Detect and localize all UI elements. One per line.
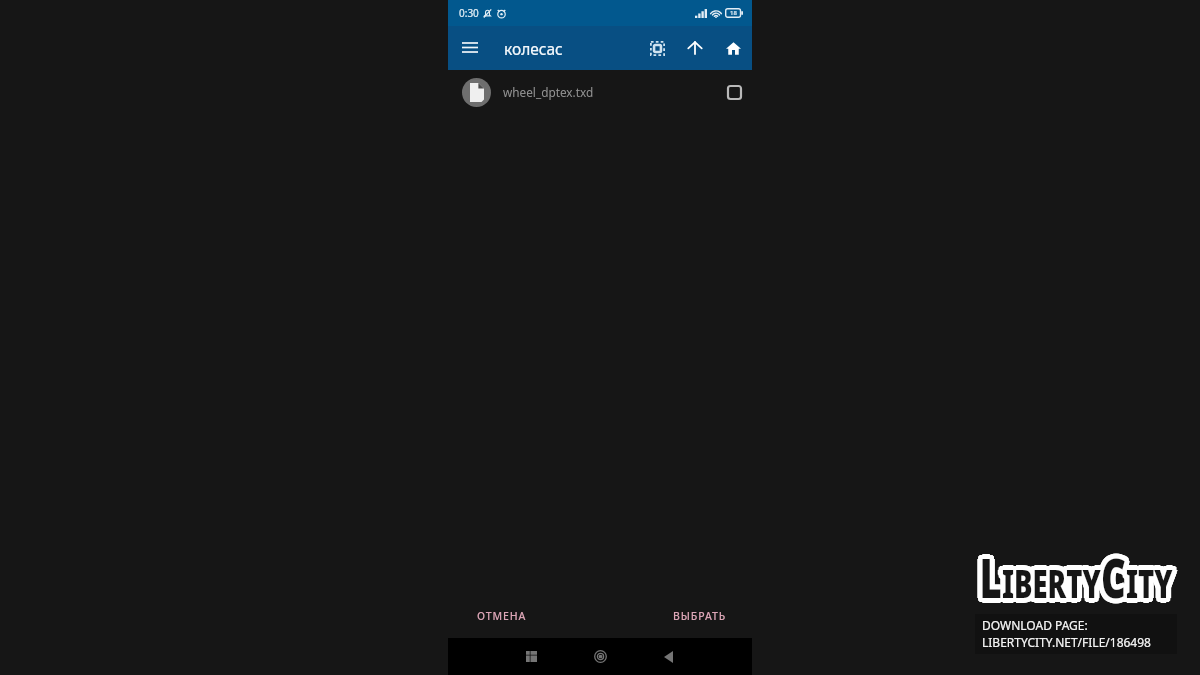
button[interactable]: ВЫБРАТЬ <box>663 594 737 638</box>
button[interactable]: Select wheel_dptex.txd <box>721 79 747 105</box>
staticText: колесас <box>504 38 563 59</box>
staticText: ВЫБРАТЬ <box>673 609 727 623</box>
button[interactable]: Home <box>714 29 752 67</box>
button[interactable]: wheel_dptex.txd <box>448 70 752 114</box>
button[interactable]: Go up <box>676 29 714 67</box>
button[interactable]: ОТМЕНА <box>467 594 537 638</box>
button[interactable]: Recent apps <box>516 638 546 675</box>
button[interactable]: Home <box>585 638 615 675</box>
staticText: wheel_dptex.txd <box>503 84 594 100</box>
button[interactable]: Select all <box>638 29 676 67</box>
staticText: LIBERTYCITY.NET/FILE/186498 <box>982 634 1151 650</box>
staticText: 0:30 <box>459 6 479 20</box>
button[interactable]: Menu <box>448 26 492 70</box>
staticText: ОТМЕНА <box>477 609 527 623</box>
staticText: DOWNLOAD PAGE: <box>982 617 1088 633</box>
button[interactable]: Back <box>653 638 683 675</box>
staticText: 18 <box>730 9 737 17</box>
